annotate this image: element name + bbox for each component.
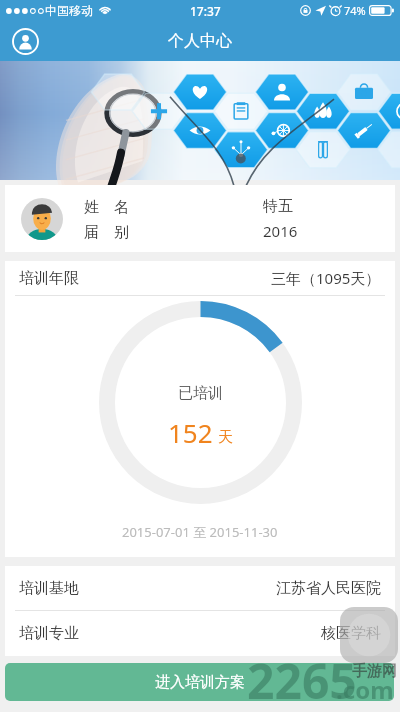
staticText: 培训基地 [19,579,79,598]
staticText: 中国移动 [45,3,93,18]
staticText: 152 [168,415,213,450]
staticText: 已培训 [178,384,223,403]
button[interactable]: 培训年限 [5,261,395,295]
staticText: 江苏省人民医院 [276,579,381,598]
staticText: 特五 [263,197,293,216]
staticText: 2016 [263,221,298,241]
staticText: 2265 [247,648,357,712]
staticText: 17:37 [190,3,221,19]
staticText: 天 [218,428,233,447]
staticText: 培训年限 [19,269,79,288]
staticText: 三年（1095天） [271,268,381,288]
staticText: 姓 名 [84,196,129,216]
staticText: 手游网 [352,662,397,681]
button[interactable]: Profile [12,28,39,55]
staticText: 核医学科 [321,624,381,643]
staticText: 届 别 [84,221,129,241]
staticText: 进入培训方案 [155,673,245,692]
staticText: .com [336,673,394,706]
button[interactable]: 培训基地 [5,566,395,610]
staticText: 培训专业 [19,624,79,643]
staticText: 74% [344,3,366,18]
staticText: 个人中心 [168,31,232,51]
button[interactable]: 培训专业 [5,611,395,656]
button[interactable]: 进入培训方案 [5,663,394,701]
staticText: 2015-07-01 至 2015-11-30 [122,523,278,541]
